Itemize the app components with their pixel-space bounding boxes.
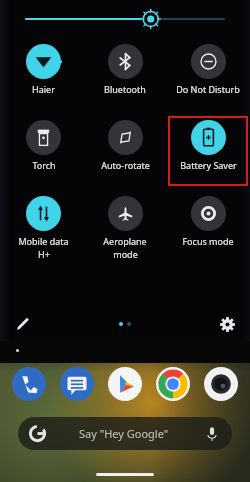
staticText: Focus mode <box>182 235 234 247</box>
button[interactable]: Play Store <box>108 367 142 401</box>
staticText: Do Not Disturb <box>176 83 240 95</box>
staticText: Aeroplane <box>103 235 147 247</box>
button[interactable]: Do Not Disturb <box>168 40 248 110</box>
button[interactable]: Mobile data <box>3 192 83 262</box>
staticText: Mobile data <box>18 235 69 247</box>
button[interactable]: Phone <box>12 367 46 401</box>
button[interactable]: Aeroplane <box>85 192 165 262</box>
staticText: H+ <box>38 248 50 260</box>
button[interactable]: Say "Hey Google" <box>18 417 232 450</box>
button[interactable]: Settings <box>214 311 240 337</box>
button[interactable]: Torch <box>3 116 83 186</box>
staticText: Battery Saver <box>180 159 237 171</box>
staticText: mode <box>113 248 138 260</box>
other: Voice search <box>204 426 220 442</box>
button[interactable]: Auto-rotate <box>85 116 165 186</box>
staticText: Say "Hey Google" <box>79 426 169 441</box>
staticText: Bluetooth <box>104 83 146 95</box>
button[interactable]: Battery Saver <box>168 116 248 186</box>
button[interactable]: Camera <box>204 367 238 401</box>
staticText: Torch <box>32 159 56 171</box>
button[interactable]: Haier <box>3 40 83 110</box>
button[interactable]: Messages <box>60 367 94 401</box>
button[interactable]: Edit tiles <box>10 311 36 337</box>
button[interactable]: Chrome <box>156 367 190 401</box>
staticText: Auto-rotate <box>101 159 150 171</box>
button[interactable]: Focus mode <box>168 192 248 262</box>
button[interactable]: Brightness <box>26 0 224 38</box>
staticText: Haier <box>32 83 55 95</box>
button[interactable]: Bluetooth <box>85 40 165 110</box>
